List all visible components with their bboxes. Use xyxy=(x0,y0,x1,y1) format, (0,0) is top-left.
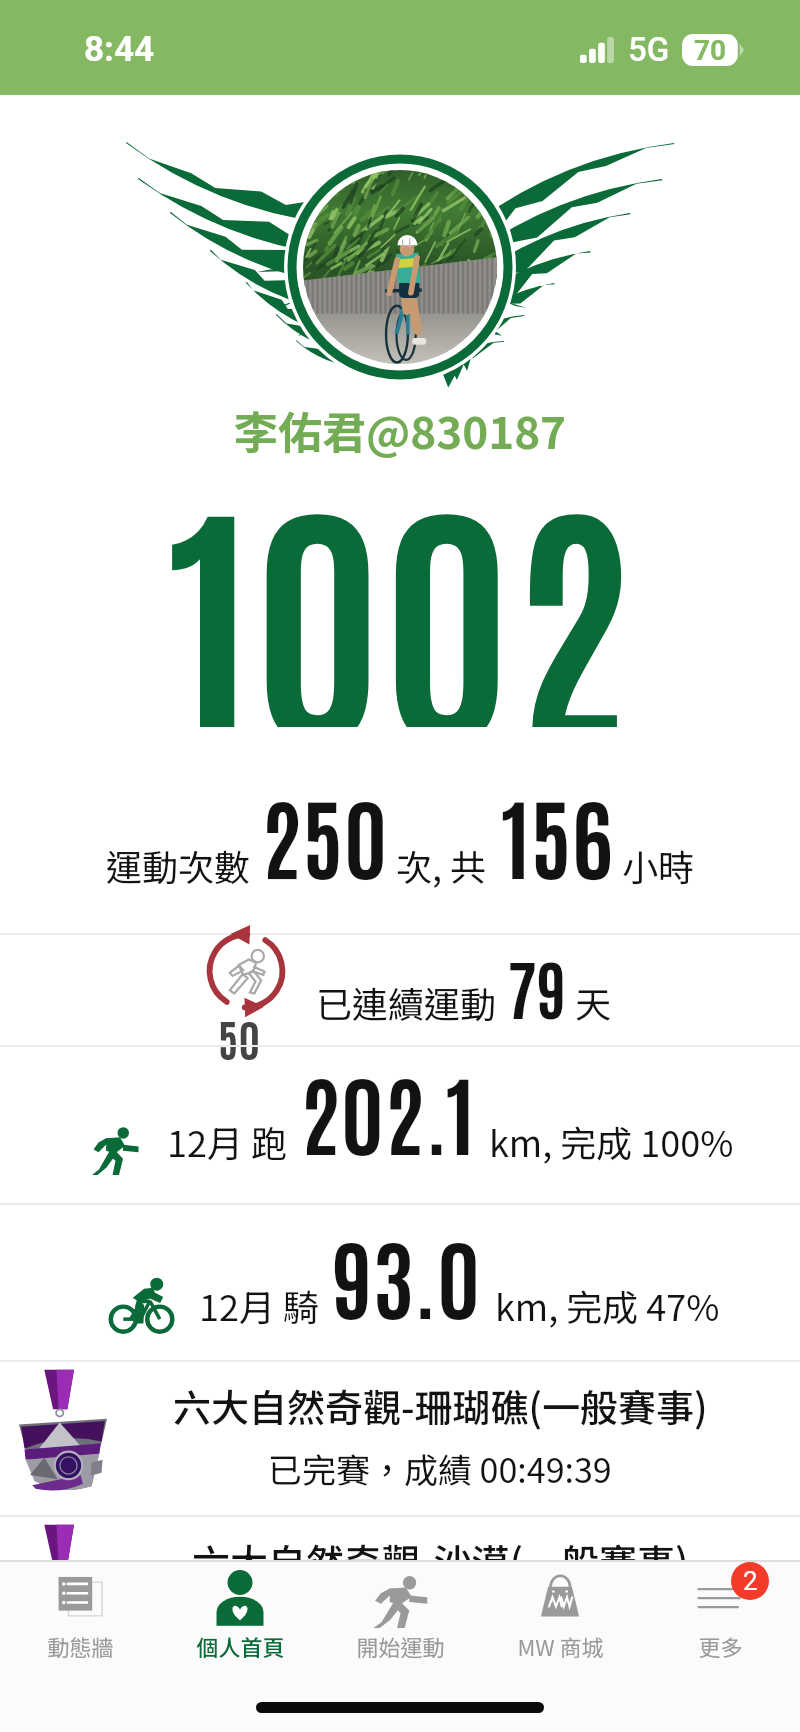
staticText: 六大自然奇觀-珊瑚礁(一般賽事) xyxy=(173,1378,708,1433)
staticText: 12月 跑 xyxy=(167,1115,288,1167)
staticText: km, 完成 100% xyxy=(489,1115,734,1167)
button[interactable]: 六大自然奇觀-珊瑚礁(一般賽事) xyxy=(0,1362,800,1515)
button[interactable]: 12月 騎 xyxy=(0,1205,800,1360)
staticText: 個人首頁 xyxy=(196,1630,285,1662)
button[interactable]: 開始運動 xyxy=(320,1562,480,1670)
staticText: 156 xyxy=(501,776,614,891)
staticText: 已連續運動 xyxy=(316,976,497,1028)
button[interactable]: 更多 xyxy=(640,1562,800,1670)
staticText: 250 xyxy=(261,776,388,891)
button[interactable]: 12月 跑 xyxy=(0,1047,800,1203)
staticText: 5G xyxy=(628,30,670,69)
staticText: 開始運動 xyxy=(356,1630,445,1662)
staticText: 已完賽，成績 00:49:39 xyxy=(268,1444,612,1493)
staticText: 93.0 xyxy=(332,1217,481,1331)
staticText: 次, 共 xyxy=(396,839,487,891)
button[interactable]: 個人首頁 xyxy=(160,1562,320,1670)
staticText: 1002 xyxy=(167,439,634,727)
staticText: 70 xyxy=(694,34,727,66)
staticText: MW 商城 xyxy=(517,1630,604,1662)
staticText: km, 完成 47% xyxy=(495,1279,720,1331)
staticText: 202.1 xyxy=(300,1053,475,1167)
staticText: 運動次數 xyxy=(106,839,251,891)
staticText: 動態牆 xyxy=(47,1630,114,1662)
button[interactable]: 六大自然奇觀-沙漠(一般賽事) xyxy=(0,1517,800,1670)
button[interactable]: MW 商城 xyxy=(480,1562,640,1670)
staticText: 更多 xyxy=(698,1630,743,1662)
staticText: 天 xyxy=(575,976,612,1028)
staticText: 已完賽，成績 01:12:03 xyxy=(268,1599,612,1648)
staticText: 79 xyxy=(507,945,567,1028)
staticText: 李佑君@830187 xyxy=(234,398,567,462)
staticText: 50 xyxy=(218,1009,261,1066)
staticText: 2 xyxy=(743,1566,758,1596)
button[interactable]: 動態牆 xyxy=(0,1562,160,1670)
staticText: 8:44 xyxy=(84,29,155,70)
staticText: 小時 xyxy=(622,839,695,891)
staticText: 12月 騎 xyxy=(199,1279,320,1331)
staticText: 六大自然奇觀-沙漠(一般賽事) xyxy=(192,1533,689,1588)
